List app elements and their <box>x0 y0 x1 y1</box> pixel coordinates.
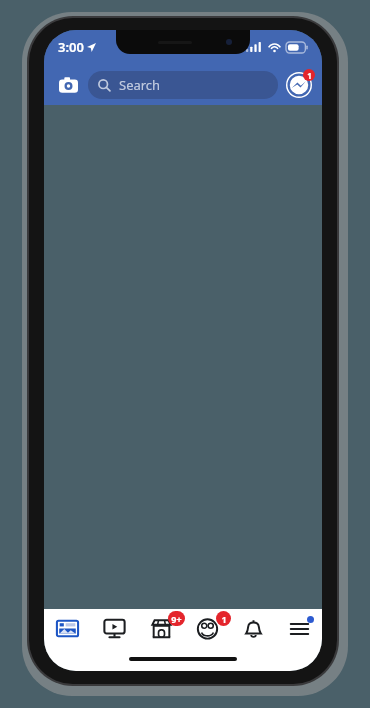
staticText: 1 <box>307 70 312 81</box>
button[interactable]: Notifications <box>230 609 276 647</box>
button[interactable]: News Feed <box>44 609 91 647</box>
button[interactable]: Camera <box>53 70 83 100</box>
button[interactable]: Groups <box>184 609 230 647</box>
button[interactable]: Messenger <box>284 70 314 100</box>
button[interactable]: Menu <box>276 609 322 647</box>
button[interactable]: Search <box>88 71 278 99</box>
staticText: 3:00 <box>58 38 84 56</box>
button[interactable]: Marketplace <box>138 609 184 647</box>
button[interactable]: Watch <box>91 609 138 647</box>
staticText: 9+ <box>171 613 182 625</box>
staticText: 1 <box>221 613 227 625</box>
staticText: Search <box>119 76 161 94</box>
